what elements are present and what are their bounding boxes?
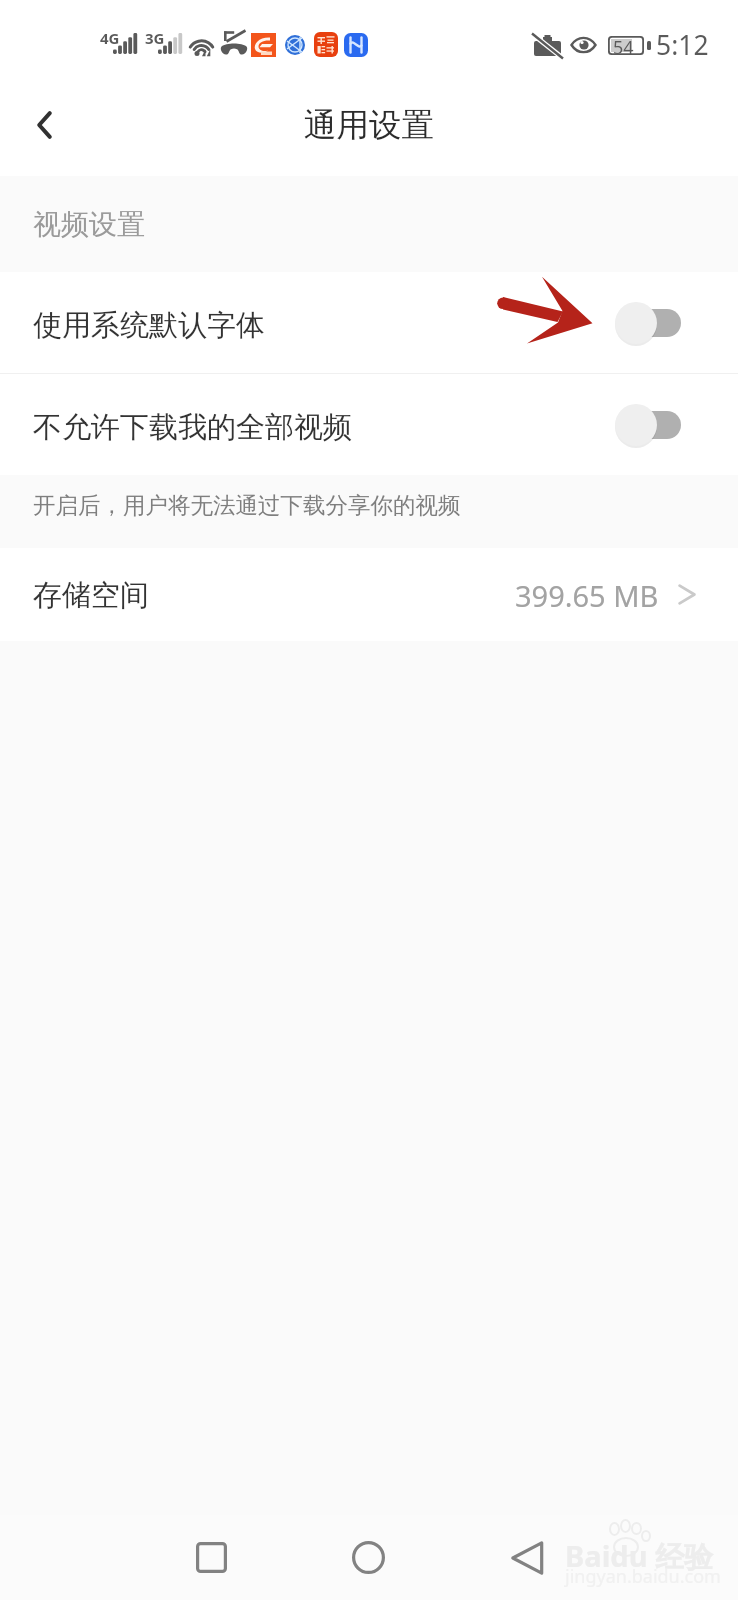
staticText: 3G: [145, 28, 165, 48]
staticText: 4G: [100, 28, 120, 48]
staticText: Baidu 经验: [565, 1536, 714, 1576]
button[interactable]: Home: [337, 1515, 399, 1600]
staticText: 使用系统默认字体: [33, 307, 265, 344]
button[interactable]: 使用系统默认字体, off: [615, 300, 681, 346]
staticText: 5:12: [656, 27, 709, 63]
button[interactable]: 存储空间: [0, 548, 738, 641]
staticText: 存储空间: [33, 577, 149, 614]
button[interactable]: Recent apps: [180, 1515, 242, 1600]
button[interactable]: 不允许下载我的全部视频: [0, 374, 738, 475]
staticText: 不允许下载我的全部视频: [33, 409, 352, 446]
staticText: 54: [613, 35, 634, 60]
staticText: 399.65 MB: [515, 576, 659, 615]
staticText: jingyan.baidu.com: [565, 1564, 721, 1589]
button[interactable]: Back: [0, 88, 88, 176]
button[interactable]: 使用系统默认字体: [0, 272, 738, 373]
staticText: 视频设置: [33, 207, 145, 242]
staticText: 开启后，用户将无法通过下载分享你的视频: [33, 491, 461, 519]
button[interactable]: 不允许下载我的全部视频, off: [615, 402, 681, 448]
staticText: 通用设置: [304, 105, 434, 146]
button[interactable]: Back: [495, 1515, 557, 1600]
